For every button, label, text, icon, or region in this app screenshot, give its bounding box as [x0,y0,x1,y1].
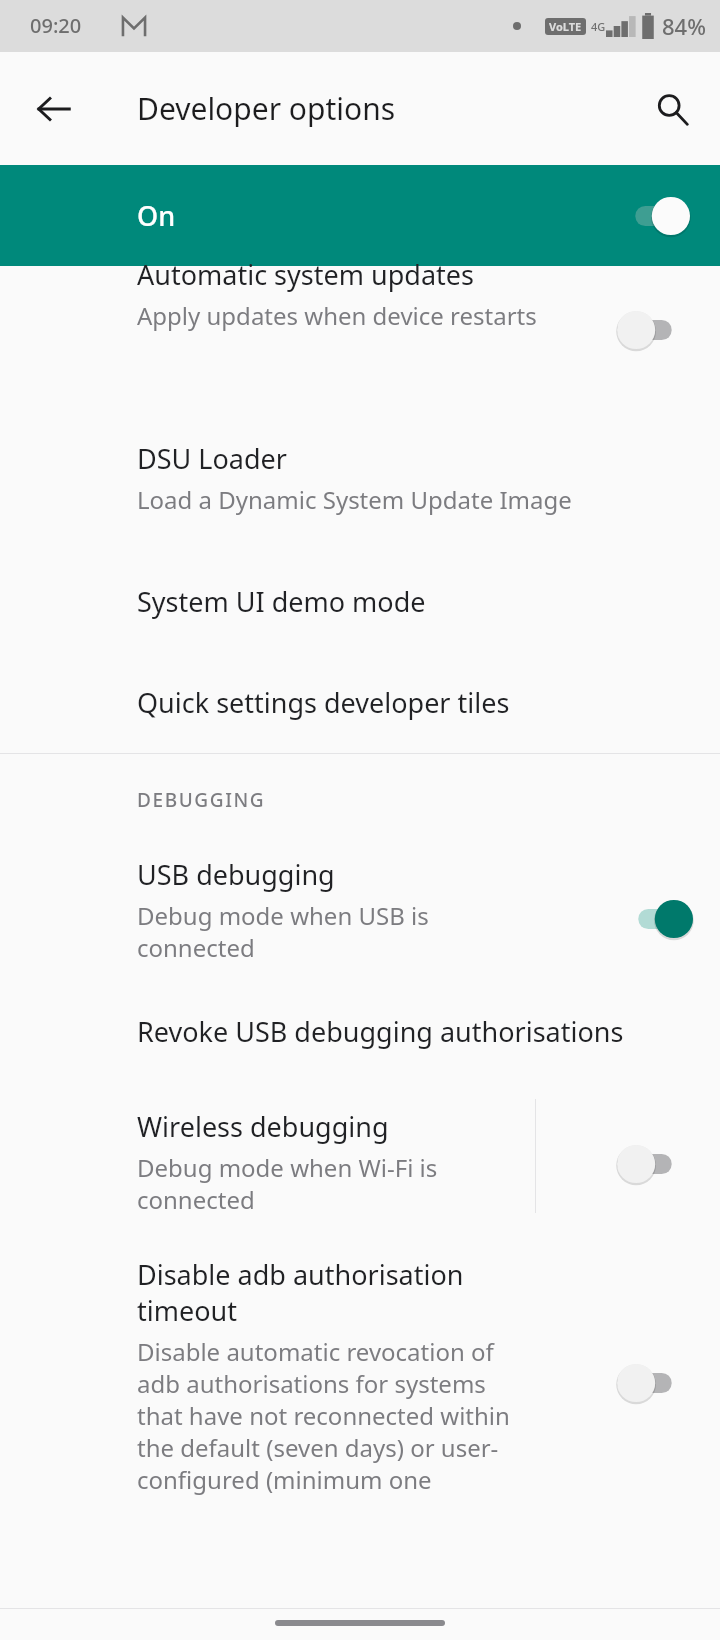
staticText: Disable automatic revocation of adb auth… [137,1335,537,1496]
staticText: Debug mode when Wi-Fi is connected [137,1151,507,1216]
button[interactable]: DSU Loader [0,418,720,550]
staticText: 84% [662,11,706,41]
button[interactable]: Wireless debugging [0,1082,720,1190]
staticText: Load a Dynamic System Update Image [137,483,572,516]
staticText: Developer options [137,88,396,129]
staticText: Wireless debugging [137,1108,389,1145]
button[interactable]: Search [640,77,704,141]
staticText: Revoke USB debugging authorisations [137,1013,624,1050]
staticText: DSU Loader [137,440,287,477]
button[interactable]: Toggle wireless debugging [617,1143,693,1185]
staticText: On [137,197,176,234]
button[interactable]: Automatic system updates [0,266,720,418]
staticText: Disable adb authorisation timeout [137,1256,537,1329]
staticText: DEBUGGING [137,787,266,813]
staticText: 4G [591,19,606,34]
staticText: Apply updates when device restarts [137,299,537,332]
button[interactable]: Quick settings developer tiles [0,652,720,753]
staticText: USB debugging [137,856,335,893]
button[interactable]: Disable adb authorisation timeout [0,1230,720,1520]
staticText: System UI demo mode [137,583,426,620]
button[interactable]: System UI demo mode [0,550,720,652]
staticText: 09:20 [30,12,82,39]
staticText: Debug mode when USB is connected [137,899,537,964]
button[interactable]: Back [20,75,88,143]
button[interactable]: On [0,165,720,266]
button[interactable]: Revoke USB debugging authorisations [0,980,720,1082]
staticText: Automatic system updates [137,256,474,293]
button[interactable]: USB debugging [0,830,720,980]
staticText: Quick settings developer tiles [137,684,510,721]
staticText: VoLTE [549,19,582,34]
